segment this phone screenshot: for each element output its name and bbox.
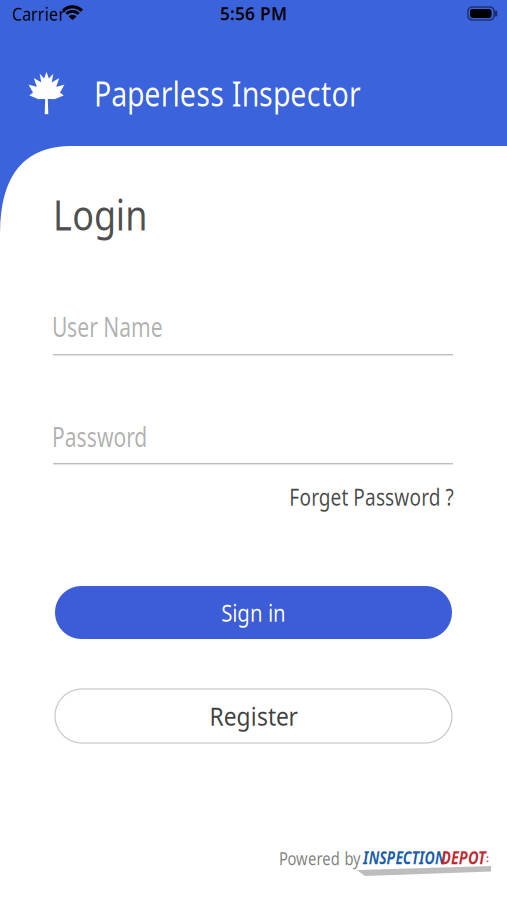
button[interactable]: Forget Password ? (258, 482, 454, 512)
staticText: DEPOT (441, 846, 494, 869)
button[interactable]: Register (55, 689, 452, 743)
staticText: User Name (52, 309, 192, 344)
staticText: Register (204, 699, 302, 733)
staticText: Powered by (279, 847, 375, 870)
staticText: 5:56 PM (220, 2, 287, 25)
staticText: Carrier (12, 1, 74, 26)
staticText: Login (53, 187, 162, 242)
staticText: INSPECTION (363, 846, 465, 869)
staticText: Forget Password ? (258, 482, 454, 512)
staticText: Sign in (215, 597, 291, 628)
button[interactable]: Sign in (55, 586, 452, 639)
staticText: Password (52, 419, 172, 454)
staticText: Paperless Inspector (94, 70, 417, 116)
staticText: : (486, 851, 489, 865)
